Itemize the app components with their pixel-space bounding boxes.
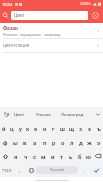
staticText: о (61, 139, 65, 146)
staticText: ж (87, 139, 92, 146)
staticText: ь (69, 153, 73, 160)
button[interactable]: щ (67, 121, 76, 135)
staticText: п (43, 139, 47, 146)
staticText: . (83, 167, 85, 173)
button[interactable]: ш (58, 121, 67, 135)
button[interactable]: Search (90, 163, 103, 177)
staticText: т (60, 153, 63, 160)
staticText: й (2, 125, 6, 132)
staticText: Россия · парадигма · самовар (3, 32, 61, 37)
button[interactable]: г (49, 121, 58, 135)
staticText: с (33, 153, 37, 160)
button[interactable]: а (30, 135, 40, 149)
button[interactable]: и (48, 149, 57, 163)
staticText: у (19, 125, 22, 132)
staticText: Русский (50, 168, 64, 172)
button[interactable]: ю (84, 149, 93, 163)
button[interactable]: д (76, 135, 85, 149)
staticText: щ (69, 125, 75, 132)
staticText: б (78, 153, 82, 160)
button[interactable]: ь (66, 149, 75, 163)
button[interactable]: Search (0, 9, 11, 21)
staticText: а (33, 139, 37, 146)
button[interactable]: н (40, 121, 49, 135)
staticText: , (19, 167, 21, 173)
staticText: ш (60, 125, 65, 132)
button[interactable]: Backspace (93, 149, 103, 163)
staticText: ?123 (2, 168, 12, 173)
button[interactable]: ч (21, 149, 30, 163)
button[interactable]: т (57, 149, 66, 163)
button[interactable]: Clear query (89, 9, 101, 21)
button[interactable]: Shift (0, 149, 11, 163)
staticText: Цвет (14, 112, 25, 117)
button[interactable]: е (32, 121, 40, 135)
staticText: ЦИРКУЛЯЦИЯ (3, 43, 96, 48)
button[interactable]: й (0, 121, 8, 135)
button[interactable]: в (20, 135, 30, 149)
staticText: г (52, 125, 55, 132)
staticText: н (43, 125, 47, 132)
staticText: ф (3, 139, 8, 146)
button[interactable]: у (16, 121, 24, 135)
button[interactable]: , (13, 163, 26, 177)
button[interactable]: п (40, 135, 49, 149)
button[interactable]: Цвет (12, 107, 27, 121)
button[interactable]: ж (85, 135, 94, 149)
staticText: ы (13, 139, 18, 146)
staticText: Ленинград (61, 112, 84, 117)
button[interactable]: с (30, 149, 39, 163)
button[interactable]: Google (0, 107, 12, 121)
staticText: д (79, 139, 83, 146)
button[interactable]: я (11, 149, 21, 163)
button[interactable]: . (78, 163, 90, 177)
button[interactable]: к (24, 121, 32, 135)
button[interactable]: х (85, 121, 94, 135)
button[interactable]: ц (8, 121, 16, 135)
button[interactable]: л (67, 135, 76, 149)
button[interactable]: Фазан (0, 23, 103, 38)
button[interactable]: м (39, 149, 48, 163)
staticText: е (34, 125, 38, 132)
staticText: р (52, 139, 56, 146)
button[interactable]: б (75, 149, 84, 163)
staticText: я (14, 153, 18, 160)
staticText: 24KB/s (80, 2, 92, 6)
staticText: ъ (97, 125, 101, 132)
button[interactable]: Space (36, 166, 78, 174)
button[interactable]: ы (10, 135, 20, 149)
button[interactable]: ф (0, 135, 10, 149)
staticText: 10:24 (2, 2, 13, 7)
button[interactable]: ъ (94, 121, 103, 135)
button[interactable]: Emoji (26, 163, 36, 177)
button[interactable]: ЦИРКУЛЯЦИЯ (0, 39, 103, 52)
staticText: Фазан (3, 25, 18, 31)
staticText: Учение (36, 112, 51, 117)
button[interactable]: Учение (27, 107, 59, 121)
button[interactable]: о (58, 135, 67, 149)
staticText: л (70, 139, 74, 146)
staticText: и (51, 153, 55, 160)
button[interactable]: ?123 (0, 163, 13, 177)
button[interactable]: Цвет (11, 11, 88, 20)
button[interactable]: р (49, 135, 58, 149)
staticText: Цвет (14, 13, 25, 18)
staticText: х (88, 125, 92, 132)
button[interactable]: More suggestions (92, 107, 103, 121)
staticText: э (97, 139, 101, 146)
staticText: з (79, 125, 83, 132)
button[interactable]: з (76, 121, 85, 135)
staticText: ю (86, 153, 91, 160)
staticText: м (41, 153, 46, 160)
staticText: ч (24, 153, 28, 160)
staticText: в (23, 139, 27, 146)
staticText: ц (10, 125, 14, 132)
button[interactable]: Ленинград (59, 107, 86, 121)
button[interactable]: э (94, 135, 103, 149)
staticText: к (26, 125, 30, 132)
